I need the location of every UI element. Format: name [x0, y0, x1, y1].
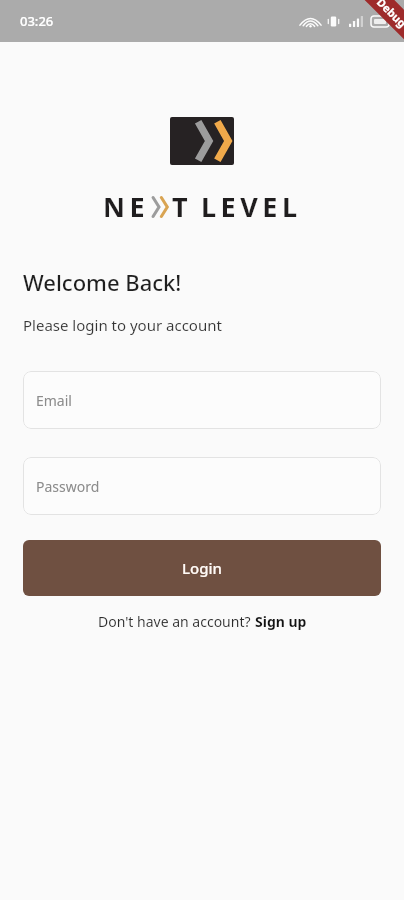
staticText: Don't have an account?	[98, 612, 255, 631]
staticText: Debug	[374, 0, 404, 31]
staticText: Login	[182, 558, 222, 578]
staticText: Email	[36, 391, 72, 410]
staticText: Sign up	[255, 612, 307, 631]
staticText: 03:26	[20, 12, 54, 30]
button[interactable]: Don't have an account?	[0, 612, 404, 631]
staticText: Please login to your account	[23, 315, 222, 335]
staticText: Welcome Back!	[23, 267, 182, 297]
button[interactable]: Password	[23, 457, 381, 515]
other: Debug banner	[330, 0, 404, 74]
staticText: Password	[36, 477, 100, 496]
staticText: NE	[103, 188, 150, 225]
staticText: T	[172, 188, 193, 225]
button[interactable]: Email	[23, 371, 381, 429]
button[interactable]: Login	[23, 540, 381, 596]
staticText: LEVEL	[201, 188, 302, 225]
